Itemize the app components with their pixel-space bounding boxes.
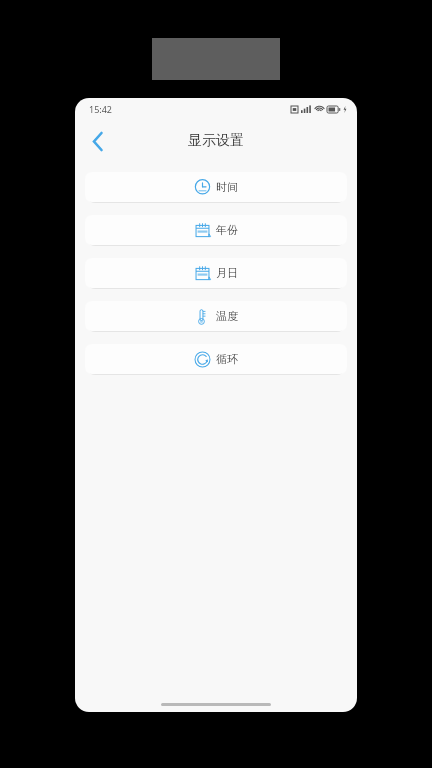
button[interactable]: 循环 <box>85 344 347 374</box>
button[interactable]: 月日 <box>85 258 347 288</box>
button[interactable]: 温度 <box>85 301 347 331</box>
button[interactable]: 时间 <box>85 172 347 202</box>
button[interactable]: 年份 <box>85 215 347 245</box>
staticText: 年份 <box>216 223 238 237</box>
staticText: 显示设置 <box>188 132 244 150</box>
staticText: 月日 <box>216 266 238 280</box>
staticText: 时间 <box>216 180 238 194</box>
staticText: 循环 <box>216 352 238 366</box>
staticText: 温度 <box>216 309 238 323</box>
staticText: 15:42 <box>89 103 113 115</box>
button[interactable]: Back <box>81 124 115 158</box>
